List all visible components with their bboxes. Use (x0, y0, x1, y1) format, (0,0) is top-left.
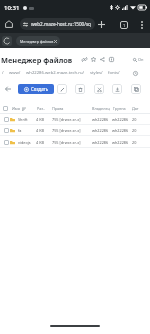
button[interactable]: Copy (131, 84, 141, 94)
staticText: wh22286 (92, 128, 109, 133)
staticText: fa (18, 128, 22, 133)
button[interactable]: Menu (135, 18, 148, 31)
button[interactable]: Cut (94, 84, 104, 94)
button[interactable]: Recent tabs (2, 36, 12, 46)
button[interactable]: fa (0, 125, 150, 136)
button[interactable]: New tab (95, 18, 108, 31)
button[interactable]: Share (98, 55, 107, 64)
button[interactable]: Download (112, 84, 122, 94)
button[interactable]: web2.maze-host.ru:1500/sq (20, 18, 95, 30)
staticText: Права (52, 106, 64, 111)
staticText: wh22286 (92, 117, 109, 122)
staticText: 20 (132, 140, 137, 145)
button[interactable]: Home (2, 17, 16, 31)
staticText: Менеджер файлов (20, 39, 54, 44)
button[interactable]: Info (107, 55, 116, 64)
staticText: styles/ (90, 70, 103, 76)
staticText: / (2, 70, 4, 76)
staticText: fonts/ (108, 70, 120, 76)
staticText: Группа (113, 106, 126, 111)
staticText: 755 [drwxr-xr-x] (52, 140, 81, 145)
staticText: Имя (12, 106, 20, 111)
staticText: wh22286 (92, 140, 109, 145)
staticText: www/ (9, 70, 21, 76)
button[interactable]: Delete (75, 84, 85, 94)
staticText: Создать (31, 86, 49, 92)
staticText: web2.maze-host.ru:1500/sq (31, 21, 91, 27)
staticText: Оп (138, 57, 144, 62)
staticText: Раз.. (37, 106, 46, 111)
staticText: 4 KB (36, 140, 44, 145)
staticText: 4 KB (36, 128, 44, 133)
button[interactable]: Tabs (117, 18, 130, 31)
staticText: 1 (123, 23, 126, 28)
staticText: wh22286 (112, 128, 129, 133)
staticText: Владелец (92, 106, 110, 111)
button[interactable]: Link (80, 55, 89, 64)
staticText: videojs (18, 140, 31, 145)
button[interactable]: Favorite (89, 55, 98, 64)
button[interactable]: Создать (18, 84, 54, 94)
button[interactable]: Edit (57, 84, 67, 94)
staticText: Shrift (18, 117, 28, 122)
staticText: 20 (132, 117, 137, 122)
button[interactable]: Refresh (132, 70, 139, 77)
staticText: wh22286 (112, 140, 129, 145)
staticText: Дат (132, 106, 139, 111)
staticText: 20 (132, 128, 137, 133)
staticText: 4 KB (36, 117, 44, 122)
button[interactable]: Search (133, 56, 144, 63)
button[interactable]: Back (2, 83, 14, 94)
button[interactable]: Менеджер файлов (16, 36, 60, 46)
staticText: wh22286 (112, 117, 129, 122)
button[interactable]: Select all (3, 106, 8, 111)
button[interactable]: videojs (0, 137, 150, 148)
button[interactable]: Shrift (0, 114, 150, 125)
staticText: 755 [drwxr-xr-x] (52, 117, 81, 122)
staticText: 10:31 (4, 4, 20, 12)
staticText: wh22286.web2.maze-tech.ru/ (26, 70, 85, 76)
staticText: 755 [drwxr-xr-x] (52, 128, 81, 133)
staticText: Менеджер файлов (1, 55, 73, 65)
